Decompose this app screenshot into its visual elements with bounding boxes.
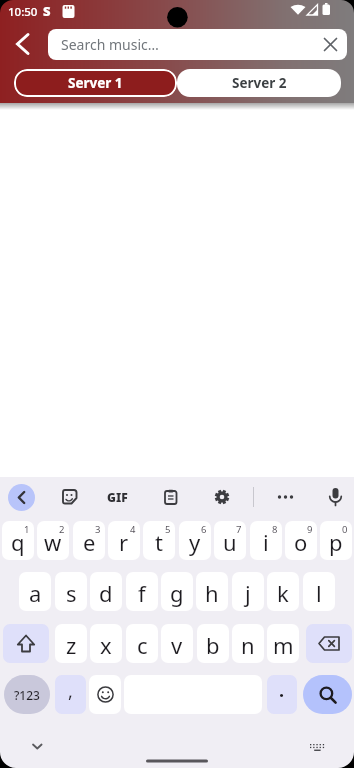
button[interactable]: f <box>126 572 158 611</box>
button[interactable]: , <box>55 675 86 714</box>
button[interactable]: r <box>108 521 140 560</box>
staticText: Search music… <box>61 35 159 54</box>
staticText: Server 1 <box>68 74 123 92</box>
button[interactable]: Search music… <box>48 29 347 60</box>
staticText: S <box>43 2 51 20</box>
staticText: n <box>241 630 255 660</box>
button[interactable]: d <box>90 572 122 611</box>
staticText: 1 <box>24 523 30 536</box>
staticText: z <box>66 630 77 660</box>
button[interactable]: Server 2 <box>177 69 341 97</box>
button[interactable] <box>303 675 352 714</box>
button[interactable]: g <box>161 572 193 611</box>
button[interactable]: x <box>90 624 122 663</box>
staticText: d <box>99 578 113 608</box>
button[interactable]: k <box>267 572 299 611</box>
button[interactable]: u <box>214 521 246 560</box>
staticText: i <box>263 527 269 557</box>
staticText: 3 <box>95 523 101 536</box>
button[interactable] <box>8 484 35 511</box>
button[interactable] <box>14 33 36 55</box>
staticText: p <box>329 527 343 557</box>
button[interactable]: c <box>126 624 158 663</box>
staticText: Server 2 <box>232 74 287 92</box>
button[interactable]: a <box>19 572 51 611</box>
staticText: , <box>68 679 73 704</box>
staticText: t <box>155 527 163 557</box>
button[interactable]: m <box>267 624 299 663</box>
staticText: f <box>138 578 146 608</box>
staticText: 5 <box>165 523 171 536</box>
button[interactable]: e <box>73 521 105 560</box>
button[interactable]: z <box>55 624 87 663</box>
button[interactable]: h <box>196 572 228 611</box>
staticText: e <box>83 527 96 557</box>
staticText: 0 <box>342 523 348 536</box>
staticText: c <box>137 630 148 660</box>
button[interactable] <box>89 675 121 714</box>
button[interactable] <box>62 489 78 505</box>
staticText: b <box>206 630 220 660</box>
button[interactable]: q <box>2 521 34 560</box>
button[interactable]: t <box>143 521 175 560</box>
button[interactable]: l <box>303 572 335 611</box>
button[interactable]: . <box>267 675 297 714</box>
staticText: o <box>294 527 308 557</box>
staticText: a <box>29 578 42 608</box>
button[interactable]: v <box>161 624 193 663</box>
staticText: 10:50 <box>8 4 38 20</box>
staticText: 2 <box>59 523 65 536</box>
button[interactable]: i <box>250 521 282 560</box>
button[interactable] <box>327 487 344 508</box>
staticText: 7 <box>236 523 242 536</box>
button[interactable] <box>306 624 352 663</box>
staticText: 8 <box>272 523 278 536</box>
button[interactable]: p <box>320 521 352 560</box>
staticText: g <box>170 578 184 608</box>
button[interactable] <box>273 489 298 505</box>
staticText: k <box>277 578 289 608</box>
staticText: . <box>279 678 285 703</box>
staticText: x <box>100 630 112 660</box>
staticText: h <box>205 578 219 608</box>
staticText: w <box>44 527 62 557</box>
button[interactable]: j <box>232 572 264 611</box>
button[interactable]: o <box>285 521 317 560</box>
button[interactable]: GIF <box>104 489 131 505</box>
button[interactable]: Server 1 <box>14 69 177 97</box>
staticText: 6 <box>201 523 207 536</box>
button[interactable]: y <box>179 521 211 560</box>
button[interactable]: n <box>232 624 264 663</box>
button[interactable] <box>163 489 179 505</box>
staticText: y <box>189 527 201 557</box>
staticText: v <box>171 630 183 660</box>
button[interactable]: w <box>37 521 69 560</box>
staticText: q <box>11 527 25 557</box>
staticText: 9 <box>307 523 313 536</box>
staticText: l <box>316 578 322 608</box>
button[interactable]: ?123 <box>4 675 50 714</box>
button[interactable]: b <box>197 624 229 663</box>
button[interactable] <box>3 624 49 663</box>
button[interactable] <box>29 740 45 750</box>
staticText: j <box>245 578 251 608</box>
staticText: r <box>119 527 129 557</box>
button[interactable] <box>308 742 326 752</box>
staticText: s <box>66 578 77 608</box>
staticText: 4 <box>130 523 136 536</box>
button[interactable] <box>214 489 230 505</box>
button[interactable]: s <box>55 572 87 611</box>
staticText: ?123 <box>14 687 40 703</box>
staticText: m <box>273 630 294 660</box>
staticText: GIF <box>107 489 128 505</box>
staticText: u <box>223 527 237 557</box>
